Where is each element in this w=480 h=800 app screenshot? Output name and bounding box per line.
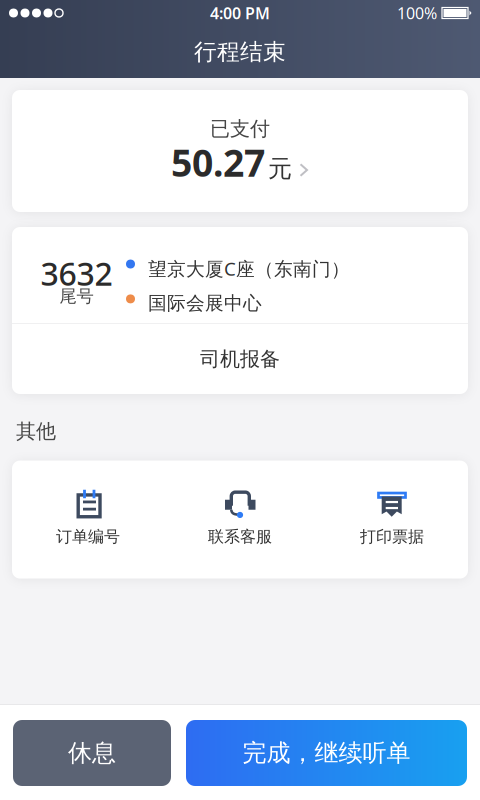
staticText: 订单编号 <box>56 527 120 546</box>
staticText: 打印票据 <box>360 527 424 546</box>
button[interactable]: 联系客服 <box>164 461 316 579</box>
button[interactable]: 打印票据 <box>316 461 468 579</box>
staticText: 休息 <box>68 738 116 768</box>
staticText: 50.27 <box>171 137 265 187</box>
staticText: 联系客服 <box>208 527 272 546</box>
staticText: 4:00 PM <box>210 2 270 24</box>
staticText: 尾号 <box>59 286 93 307</box>
button[interactable]: 完成，继续听单 <box>186 720 467 786</box>
staticText: 司机报备 <box>200 347 280 371</box>
button[interactable]: 司机报备 <box>12 324 468 394</box>
staticText: 国际会展中心 <box>148 292 262 315</box>
staticText: 已支付 <box>210 116 270 141</box>
staticText: 望京大厦C座（东南门） <box>148 256 350 281</box>
staticText: 行程结束 <box>194 38 286 66</box>
button[interactable]: 已支付 <box>12 90 468 212</box>
button[interactable]: 订单编号 <box>12 461 164 579</box>
staticText: 3632 <box>40 252 112 295</box>
staticText: 100% <box>397 2 437 24</box>
button[interactable]: 休息 <box>13 720 171 786</box>
staticText: 完成，继续听单 <box>242 738 410 768</box>
staticText: 元 <box>268 154 292 183</box>
staticText: 其他 <box>16 419 56 444</box>
